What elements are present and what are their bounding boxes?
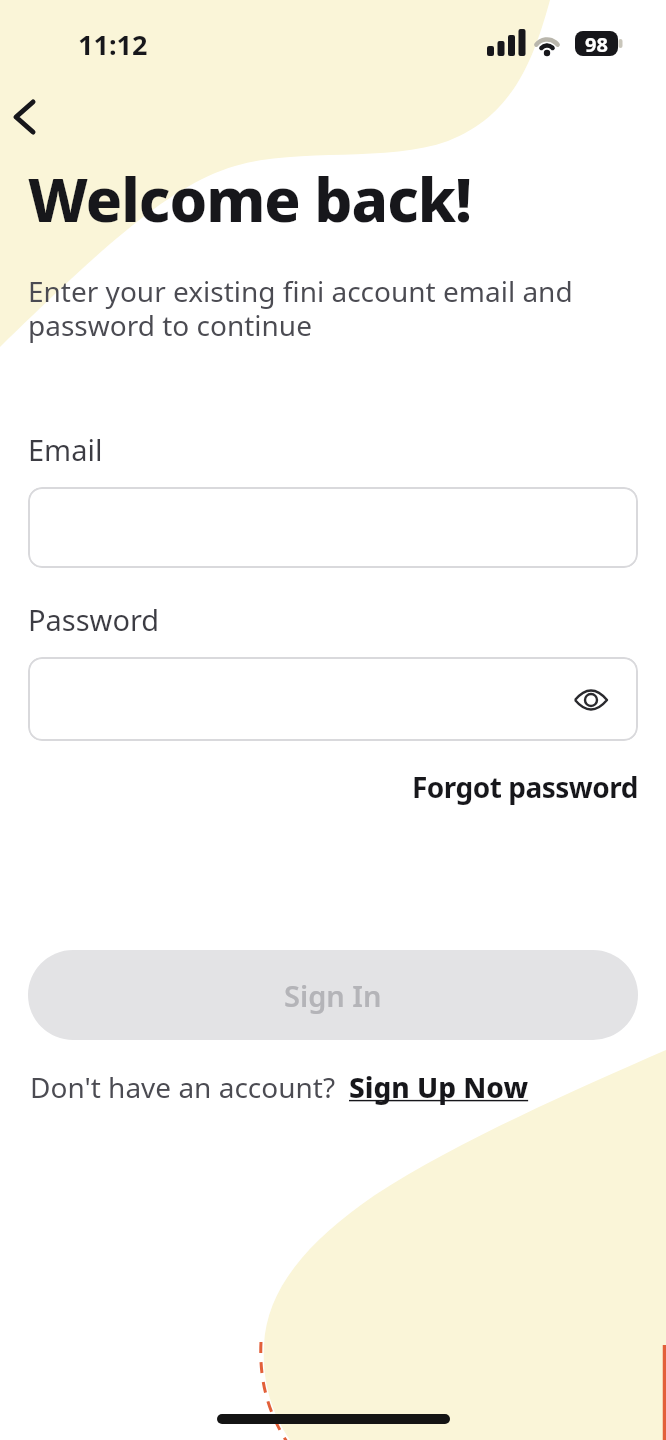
staticText: 11:12 [78, 26, 148, 63]
button[interactable]: Sign Up Now [349, 1068, 529, 1106]
staticText: Password [28, 600, 160, 639]
staticText: Sign In [284, 976, 382, 1015]
staticText: Welcome back! [28, 158, 472, 240]
button[interactable]: Sign In [28, 950, 638, 1040]
button[interactable]: Forgot password [412, 768, 638, 806]
button[interactable] [4, 95, 50, 141]
staticText: 98 [585, 31, 608, 56]
staticText: Don't have an account? [30, 1068, 336, 1106]
staticText: Enter your existing fini account email a… [28, 272, 573, 344]
staticText: Email [28, 430, 103, 469]
button[interactable] [28, 657, 638, 741]
button[interactable] [28, 487, 638, 568]
